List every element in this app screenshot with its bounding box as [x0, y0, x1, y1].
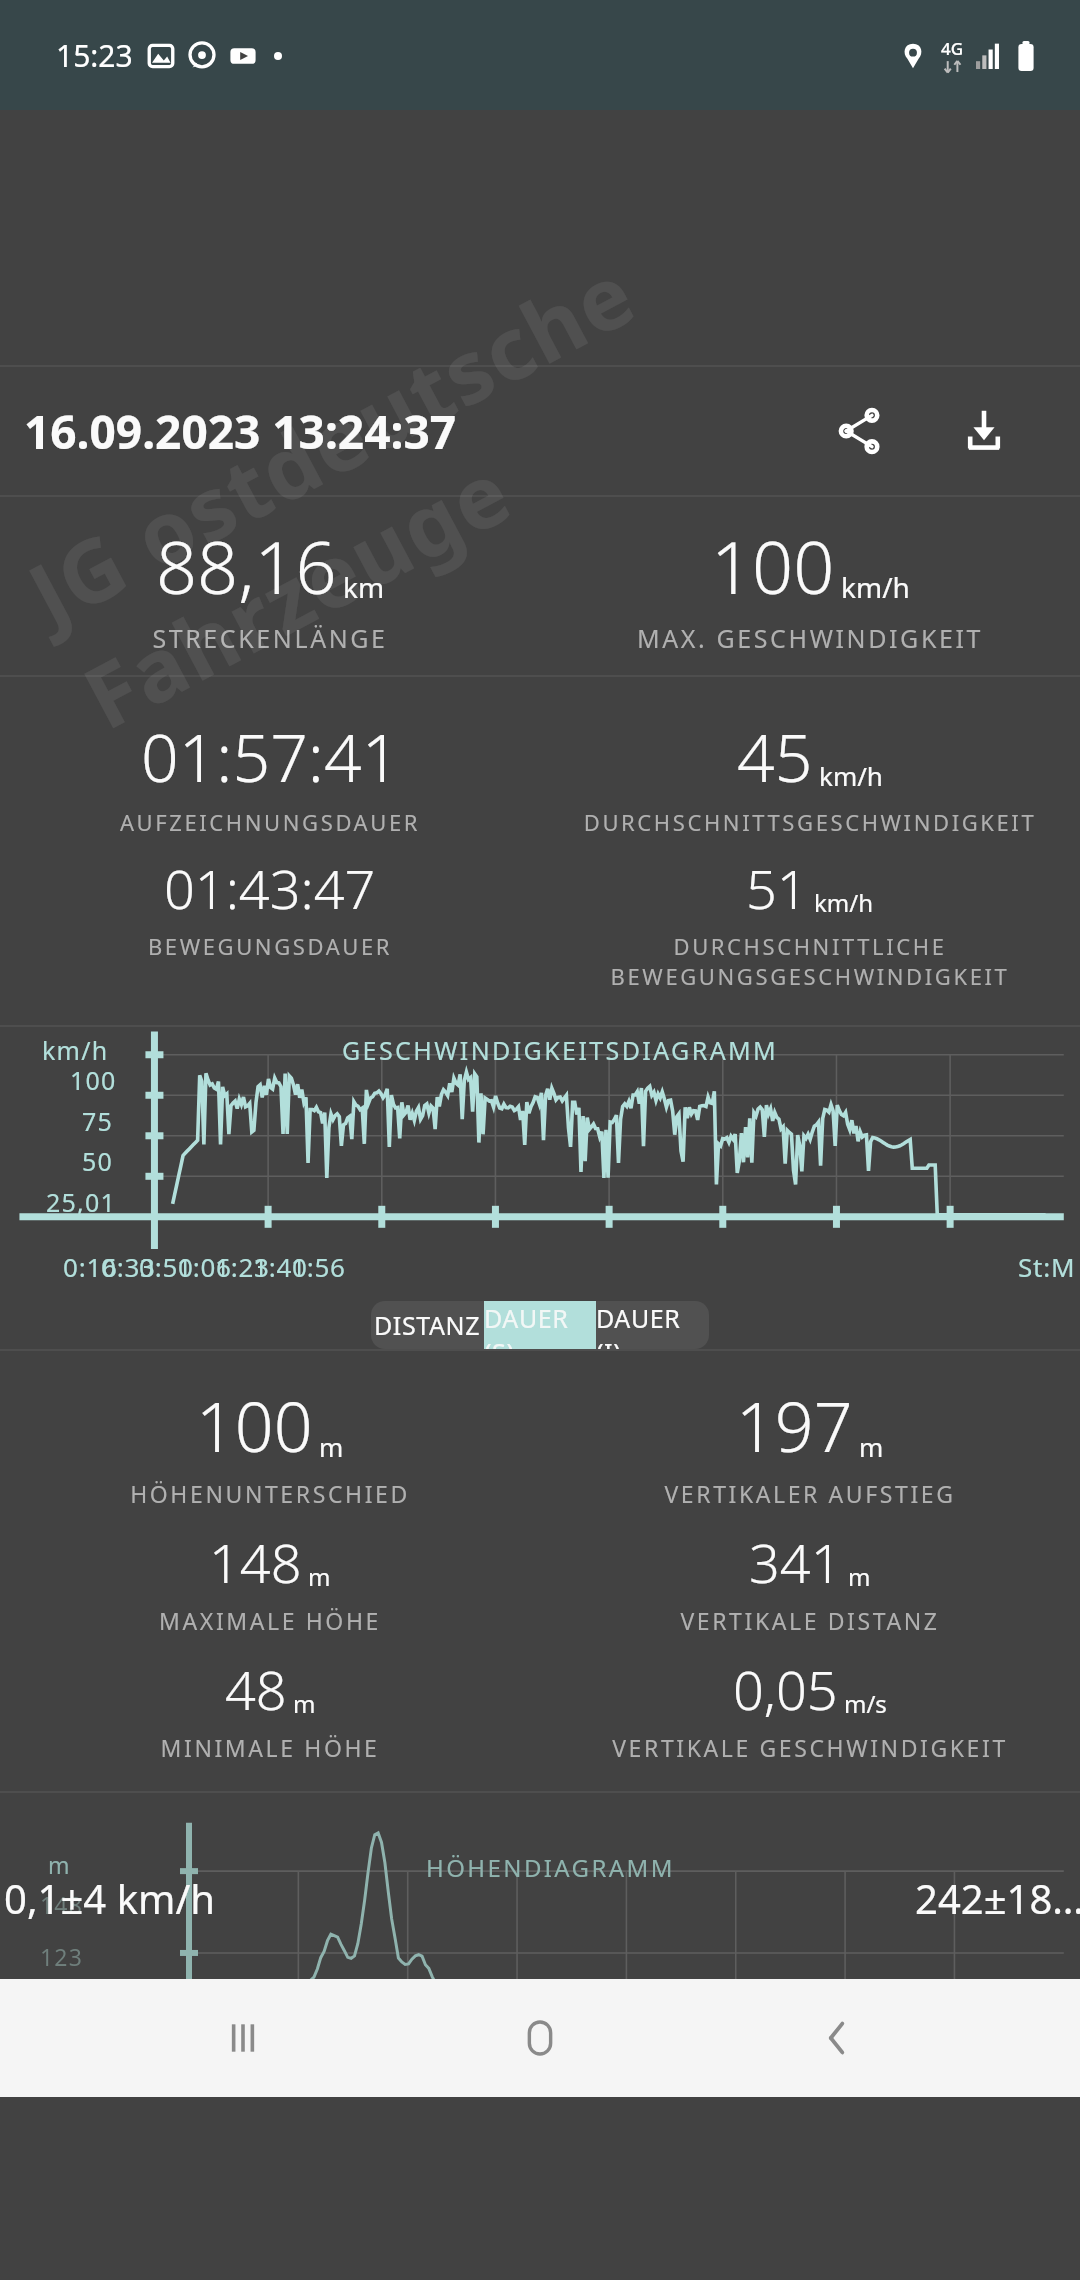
staticText: m	[859, 1429, 884, 1464]
staticText: m	[308, 1560, 331, 1593]
button[interactable]: 197	[540, 1379, 1080, 1509]
staticText: 1:06	[177, 1249, 232, 1284]
button[interactable]: DAUER (I)	[596, 1301, 709, 1349]
staticText: St:M	[1018, 1249, 1076, 1284]
staticText: 148	[40, 1889, 84, 1920]
button[interactable]: DISTANZ	[371, 1301, 484, 1349]
staticText: 01:43:47	[164, 851, 376, 925]
staticText: 0,05	[733, 1652, 838, 1726]
button[interactable]: Share	[812, 383, 908, 479]
staticText: km/h	[841, 568, 910, 606]
button[interactable]: 100	[540, 517, 1080, 655]
staticText: km/h	[819, 758, 883, 793]
staticText: km	[343, 568, 385, 606]
staticText: 25,01	[46, 1185, 116, 1219]
staticText: AUFZEICHNUNGSDAUER	[0, 807, 540, 837]
staticText: 45	[737, 711, 813, 801]
staticText: 16.09.2023 13:24:37	[24, 400, 457, 463]
button[interactable]: Recent apps	[188, 1983, 298, 2093]
staticText: DAUER (I)	[596, 1301, 709, 1349]
button[interactable]: 48	[0, 1652, 540, 1763]
button[interactable]: 16.09.2023 13:24:37	[24, 400, 457, 463]
staticText: 1:56	[291, 1249, 346, 1284]
staticText: 1:23	[215, 1249, 270, 1284]
staticText: 0,1±4 km/h	[4, 1871, 215, 1925]
staticText: DURCHSCHNITTLICHE BEWEGUNGSGESCHWINDIGKE…	[540, 931, 1080, 991]
staticText: 01:57:41	[141, 711, 400, 801]
staticText: 0:16	[63, 1249, 118, 1284]
staticText: MAX. GESCHWINDIGKEIT	[540, 621, 1080, 655]
staticText: MINIMALE HÖHE	[0, 1732, 540, 1763]
staticText: 75	[82, 1104, 114, 1138]
staticText: m	[319, 1429, 344, 1464]
staticText: DISTANZ	[374, 1308, 481, 1342]
staticText: VERTIKALE DISTANZ	[540, 1605, 1080, 1636]
staticText: 123	[40, 1941, 84, 1972]
staticText: STRECKENLÄNGE	[0, 621, 540, 655]
staticText: 100	[711, 517, 835, 615]
staticText: 148	[209, 1525, 302, 1599]
staticText: HÖHENUNTERSCHIED	[0, 1478, 540, 1509]
staticText: DURCHSCHNITTSGESCHWINDIGKEIT	[540, 807, 1080, 837]
staticText: 88,16	[156, 517, 337, 615]
staticText: 0:50	[139, 1249, 194, 1284]
staticText: 341	[749, 1525, 842, 1599]
button[interactable]: 01:43:47	[0, 851, 540, 961]
staticText: km/h	[42, 1033, 109, 1067]
staticText: m	[848, 1560, 871, 1593]
button[interactable]: 341	[540, 1525, 1080, 1636]
staticText: VERTIKALE GESCHWINDIGKEIT	[540, 1732, 1080, 1763]
staticText: MAXIMALE HÖHE	[0, 1605, 540, 1636]
button[interactable]: 148	[0, 1525, 540, 1636]
button[interactable]: 01:57:41	[0, 711, 540, 837]
staticText: GESCHWINDIGKEITSDIAGRAMM	[342, 1033, 779, 1067]
button[interactable]: 88,16	[0, 517, 540, 655]
staticText: JG ostdeutsche Fahrzeuge	[8, 40, 1072, 754]
staticText: HÖHENDIAGRAMM	[426, 1851, 675, 1884]
staticText: 0:33	[101, 1249, 156, 1284]
staticText: 4G	[941, 37, 964, 60]
staticText: 50	[82, 1144, 114, 1178]
staticText: m	[48, 1849, 71, 1880]
button[interactable]: Download	[936, 383, 1032, 479]
staticText: 1:40	[253, 1249, 308, 1284]
staticText: 51	[746, 851, 808, 925]
staticText: 100	[70, 1063, 117, 1097]
button[interactable]: 51	[540, 851, 1080, 991]
staticText: VERTIKALER AUFSTIEG	[540, 1478, 1080, 1509]
staticText: 100	[196, 1379, 313, 1472]
staticText: 242±18…	[915, 1871, 1080, 1925]
staticText: km/h	[814, 886, 874, 919]
staticText: 48	[225, 1652, 287, 1726]
button[interactable]: Home	[485, 1983, 595, 2093]
staticText: 197	[736, 1379, 853, 1472]
button[interactable]: 0,05	[540, 1652, 1080, 1763]
staticText: 15:23	[56, 35, 133, 76]
button[interactable]: DAUER (S)	[484, 1301, 596, 1349]
staticText: DAUER (S)	[484, 1301, 596, 1349]
button[interactable]: 100	[0, 1379, 540, 1509]
staticText: m	[293, 1687, 316, 1720]
button[interactable]: Back	[783, 1983, 893, 2093]
button[interactable]: 45	[540, 711, 1080, 837]
staticText: BEWEGUNGSDAUER	[0, 931, 540, 961]
staticText: m/s	[844, 1687, 887, 1720]
